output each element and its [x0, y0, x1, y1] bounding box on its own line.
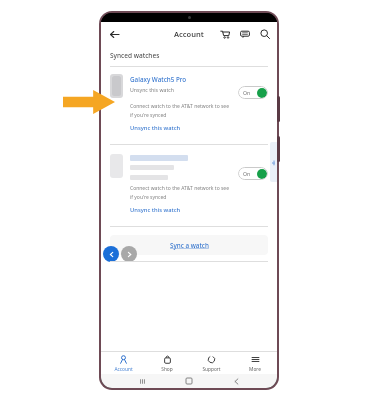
button[interactable]: Shop [145, 352, 189, 374]
button[interactable]: Next [121, 246, 137, 262]
button[interactable]: Back [230, 375, 242, 387]
button[interactable]: Home [183, 375, 195, 387]
staticText: Unsync this watch [130, 86, 174, 93]
staticText: Support [202, 366, 221, 373]
staticText: Account [114, 366, 133, 373]
staticText: Feedback [270, 158, 277, 165]
staticText: On [243, 89, 251, 96]
staticText: Connect watch to the AT&T network to see [130, 103, 230, 110]
button[interactable]: Unsync this watch [130, 124, 181, 132]
staticText: if you're synced [130, 194, 167, 201]
button[interactable]: Unsync this watch [130, 206, 181, 214]
button[interactable]: Back [106, 26, 122, 42]
button[interactable]: More [233, 352, 277, 374]
staticText: Unsync this watch [130, 124, 181, 132]
staticText: Sync a watch [170, 241, 209, 250]
staticText: More [249, 366, 261, 373]
staticText: Connect watch to the AT&T network to see [130, 185, 230, 192]
button[interactable]: Cart [218, 27, 232, 41]
button[interactable]: Sync toggle On [238, 167, 268, 180]
button[interactable]: Search [258, 27, 272, 41]
staticText: Synced watches [110, 51, 160, 60]
staticText: Unsync this watch [130, 206, 181, 214]
button[interactable]: Chat [238, 27, 252, 41]
button[interactable]: Previous [103, 246, 119, 262]
button[interactable]: Feedback [270, 142, 277, 182]
button[interactable]: Account [101, 352, 145, 374]
staticText: Account [174, 29, 204, 39]
staticText: On [243, 170, 251, 177]
staticText: if you're synced [130, 112, 167, 119]
button[interactable]: Support [189, 352, 233, 374]
button[interactable]: Galaxy Watch5 Pro [130, 75, 187, 84]
button[interactable]: Sync a watch [110, 235, 268, 255]
staticText: Shop [161, 366, 173, 373]
button[interactable]: Recents [136, 375, 148, 387]
staticText: Galaxy Watch5 Pro [130, 75, 187, 84]
button[interactable]: Sync toggle On [238, 86, 268, 99]
